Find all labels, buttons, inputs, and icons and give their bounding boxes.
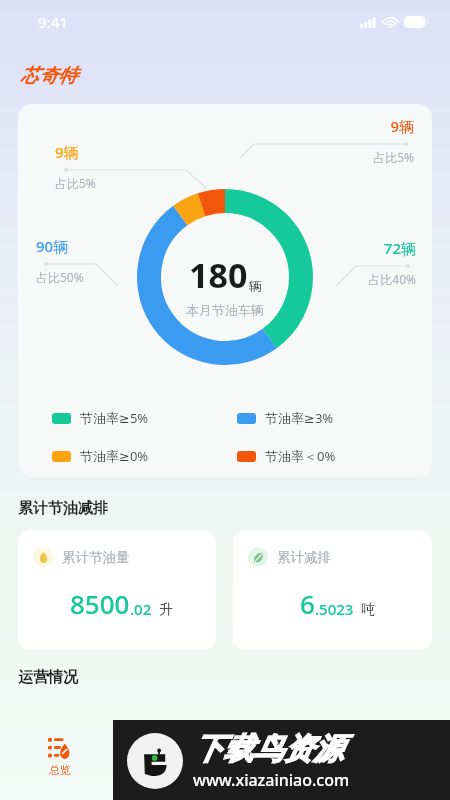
button[interactable]: 节油率＜0% bbox=[237, 447, 410, 465]
staticText: 辆 bbox=[249, 278, 262, 294]
other: 总览 bbox=[48, 736, 71, 759]
button[interactable]: 节油率≥5% bbox=[52, 409, 225, 427]
staticText: .5023 bbox=[315, 599, 354, 619]
staticText: 90辆 bbox=[36, 236, 69, 256]
button[interactable]: 节油率≥3% bbox=[237, 409, 410, 427]
staticText: 占比40% bbox=[368, 271, 416, 287]
button[interactable]: 累计减排 bbox=[233, 530, 432, 650]
staticText: 累计节油量 bbox=[62, 549, 130, 566]
staticText: 节油率≥3% bbox=[265, 409, 334, 427]
staticText: 本月节油车辆 bbox=[186, 302, 264, 318]
staticText: 运营情况 bbox=[18, 668, 78, 687]
staticText: .02 bbox=[130, 599, 152, 619]
staticText: 芯奇特 bbox=[20, 64, 77, 88]
button[interactable]: 节油率≥0% bbox=[52, 447, 225, 465]
staticText: 72辆 bbox=[383, 238, 416, 258]
staticText: 占比50% bbox=[36, 269, 84, 285]
staticText: 9辆 bbox=[55, 142, 79, 162]
staticText: 8500 bbox=[70, 586, 130, 621]
staticText: 吨 bbox=[361, 601, 375, 619]
button[interactable]: 累计节油量 bbox=[18, 530, 216, 650]
staticText: 节油率≥5% bbox=[80, 409, 149, 427]
staticText: 占比5% bbox=[373, 149, 414, 165]
staticText: 总览 bbox=[49, 763, 71, 777]
staticText: www.xiazainiao.com bbox=[193, 769, 350, 791]
staticText: 下载鸟资源 bbox=[193, 730, 343, 768]
button[interactable]: 总览 bbox=[42, 730, 77, 783]
staticText: 6 bbox=[300, 586, 315, 621]
staticText: 节油率≥0% bbox=[80, 447, 149, 465]
staticText: 累计减排 bbox=[277, 549, 331, 566]
staticText: 180 bbox=[189, 252, 248, 298]
staticText: 9:41 bbox=[38, 12, 68, 32]
staticText: 累计节油减排 bbox=[18, 499, 108, 518]
staticText: 占比5% bbox=[55, 175, 96, 191]
staticText: 节油率＜0% bbox=[265, 447, 336, 465]
staticText: 9辆 bbox=[390, 116, 414, 136]
staticText: 升 bbox=[159, 601, 173, 619]
